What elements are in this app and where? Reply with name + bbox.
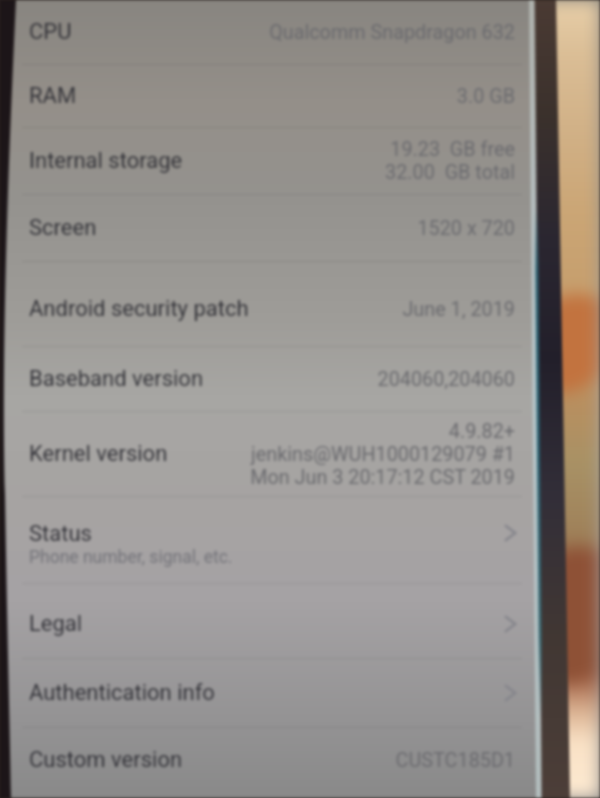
button[interactable]: Internal storage — [0, 128, 600, 194]
staticText: 19.23 GB free — [390, 138, 515, 161]
staticText: CUSTC185D1 — [395, 749, 515, 772]
staticText: 3.0 GB — [456, 85, 515, 108]
staticText: jenkins@WUH1000129079 #1 — [251, 443, 515, 466]
other: Open Legal — [498, 612, 522, 636]
staticText: 1520 x 720 — [417, 217, 515, 240]
staticText: Screen — [29, 215, 97, 241]
button[interactable]: Android security patch — [0, 272, 600, 346]
staticText: Baseband version — [29, 366, 204, 392]
staticText: June 1, 2019 — [402, 298, 515, 321]
button[interactable]: CPU — [0, 0, 600, 64]
staticText: Kernel version — [29, 441, 168, 467]
button[interactable]: Legal — [0, 590, 600, 658]
staticText: CPU — [29, 19, 72, 45]
staticText: Phone number, signal, etc. — [29, 547, 233, 568]
button[interactable]: Screen — [0, 195, 600, 261]
staticText: 32.00 GB total — [385, 161, 515, 184]
other: Open Status — [498, 521, 522, 545]
staticText: Internal storage — [29, 148, 183, 174]
button[interactable]: Status — [0, 505, 600, 583]
staticText: Qualcomm Snapdragon 632 — [269, 21, 515, 44]
staticText: 4.9.82+ — [448, 420, 515, 443]
staticText: Android security patch — [29, 296, 249, 322]
button[interactable]: Authentication info — [0, 659, 600, 727]
staticText: Status — [29, 521, 92, 547]
staticText: Authentication info — [29, 680, 215, 706]
button[interactable]: Baseband version — [0, 347, 600, 411]
button[interactable]: RAM — [0, 65, 600, 127]
staticText: Custom version — [29, 747, 183, 773]
staticText: RAM — [29, 83, 77, 109]
button[interactable]: Kernel version — [0, 412, 600, 496]
button[interactable]: Custom version — [0, 728, 600, 792]
staticText: 204060,204060 — [377, 368, 515, 391]
other: Open Authentication info — [498, 681, 522, 705]
staticText: Legal — [29, 611, 83, 637]
staticText: Mon Jun 3 20:17:12 CST 2019 — [250, 466, 515, 489]
